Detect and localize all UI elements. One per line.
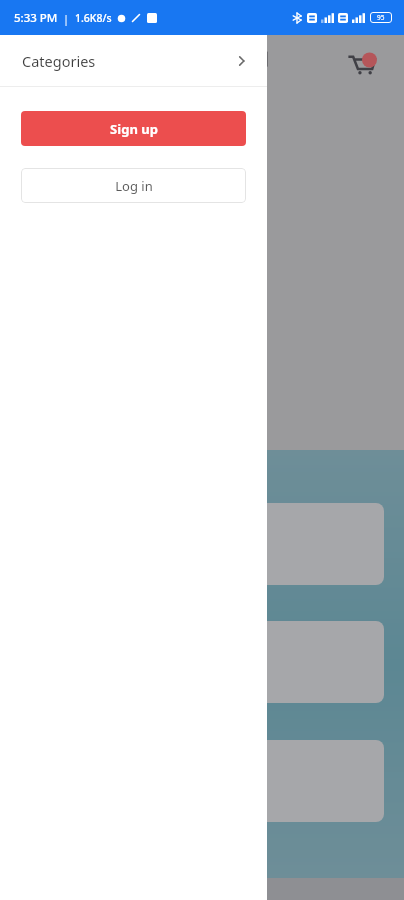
button[interactable]: Sign up xyxy=(21,111,246,146)
staticText: Shopping from xyxy=(22,172,250,214)
button[interactable] xyxy=(18,503,384,585)
button[interactable] xyxy=(18,740,384,822)
button[interactable]: Log in xyxy=(21,168,246,203)
staticText: | xyxy=(63,11,70,26)
staticText: 1.6K8/s xyxy=(75,11,112,25)
staticText: 5:33 PM xyxy=(14,10,58,26)
staticText: 95 xyxy=(377,13,385,22)
staticText: Sign up xyxy=(110,120,158,138)
staticText: Categories xyxy=(22,51,96,71)
button[interactable] xyxy=(18,621,384,703)
button[interactable]: Categories xyxy=(0,35,267,86)
staticText: Log in xyxy=(115,177,153,195)
button[interactable]: Cart xyxy=(345,48,379,82)
